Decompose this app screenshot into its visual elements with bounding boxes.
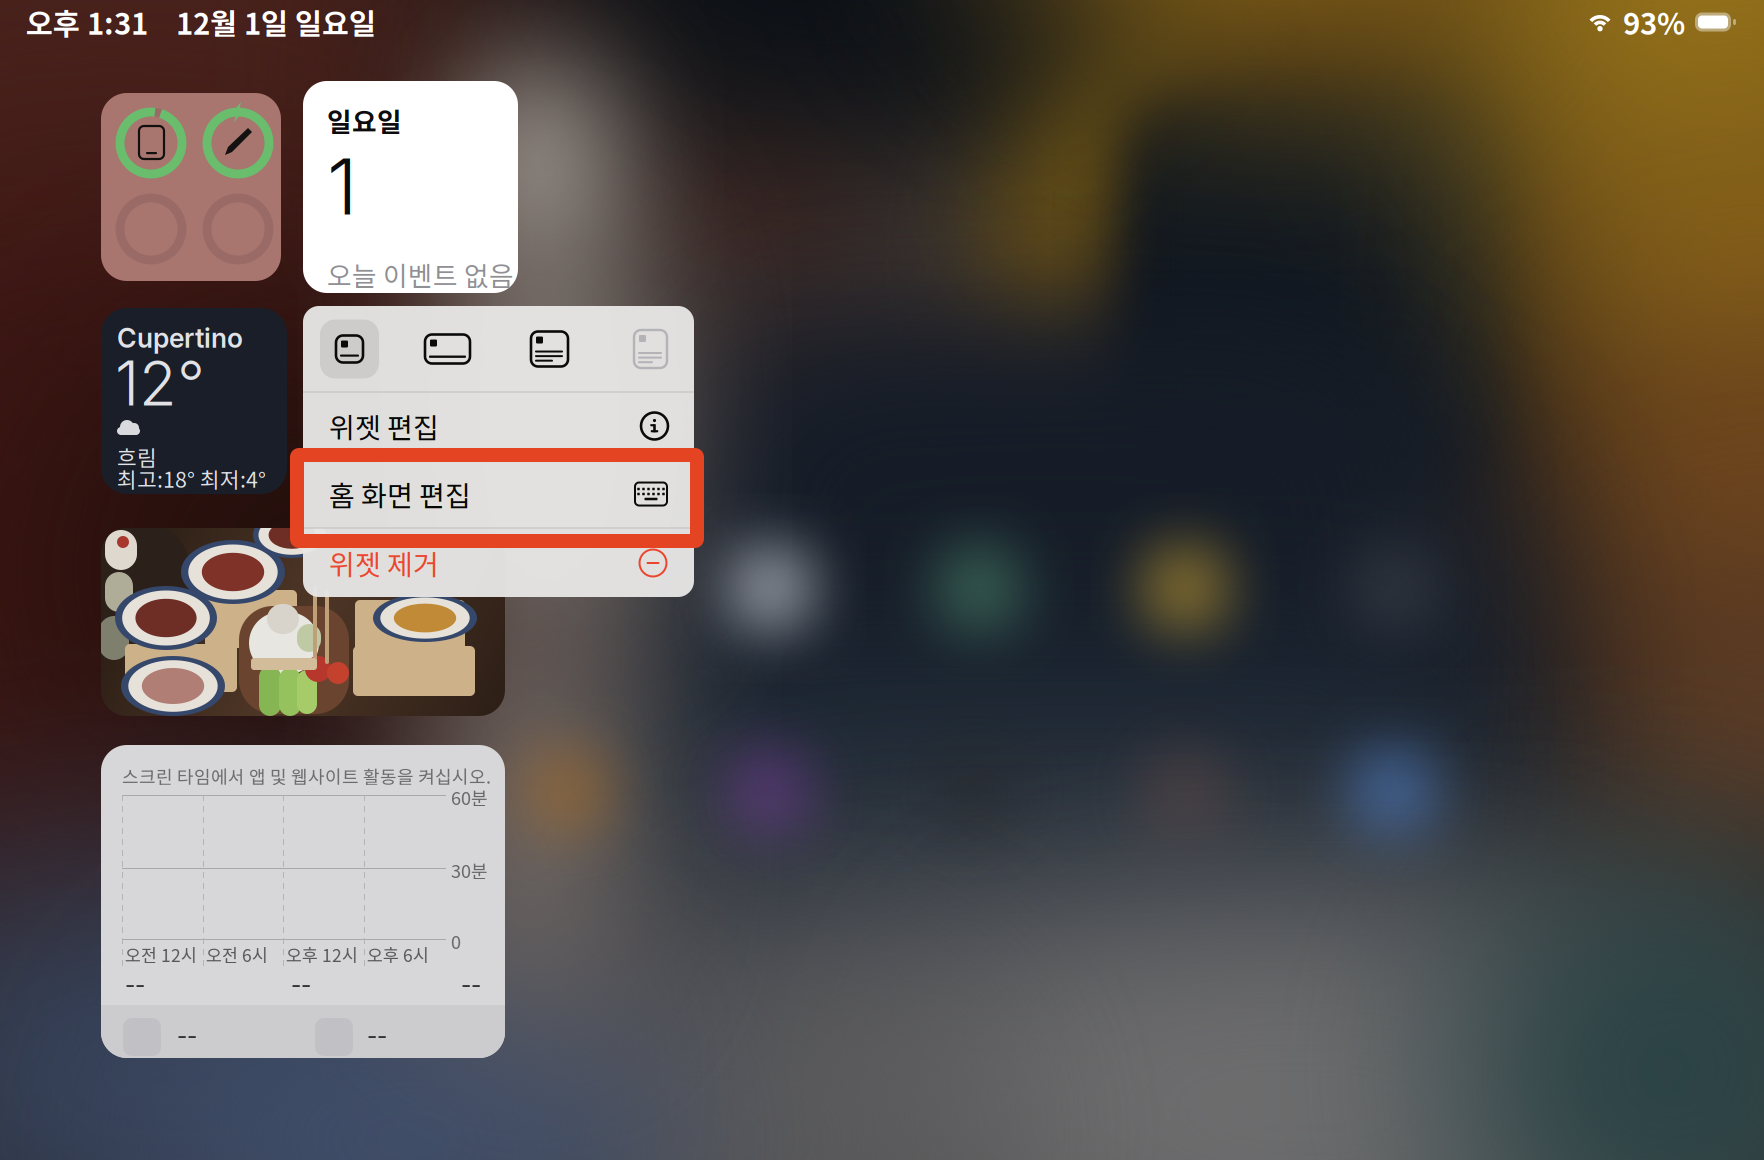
- staticText: 스크린 타임에서 앱 및 웹사이트 활동을 켜십시오.: [122, 763, 491, 789]
- staticText: 30분: [451, 857, 488, 883]
- staticText: --: [291, 971, 311, 998]
- staticText: --: [125, 971, 145, 998]
- staticText: 12월 1일 일요일: [176, 1, 376, 43]
- button[interactable]: 위젯 제거: [303, 528, 694, 597]
- staticText: 60분: [451, 784, 488, 810]
- staticText: 12°: [115, 346, 205, 420]
- button[interactable]: Medium widget size: [418, 319, 477, 378]
- staticText: 홈 화면 편집: [329, 474, 471, 514]
- button[interactable]: Small widget size: [320, 319, 379, 378]
- staticText: 위젯 제거: [329, 543, 439, 583]
- staticText: 오전 6시: [206, 942, 268, 967]
- button[interactable]: 홈 화면 편집: [303, 460, 694, 527]
- button[interactable]: Extra large widget size: [621, 319, 680, 378]
- staticText: 흐림: [117, 441, 157, 472]
- staticText: 93%: [1623, 1, 1685, 43]
- button[interactable]: 위젯 편집: [303, 392, 694, 459]
- staticText: 오후 12시: [286, 942, 358, 967]
- staticText: --: [367, 1022, 387, 1049]
- staticText: 오후 1:31: [26, 1, 148, 43]
- staticText: --: [177, 1022, 197, 1049]
- staticText: 일요일: [327, 101, 402, 140]
- button[interactable]: Large widget size: [520, 319, 579, 378]
- staticText: --: [461, 971, 481, 998]
- staticText: 오늘 이벤트 없음: [327, 255, 514, 294]
- staticText: 위젯 편집: [329, 406, 439, 446]
- staticText: 1: [327, 140, 357, 233]
- staticText: Cupertino: [117, 322, 243, 354]
- staticText: 0: [451, 928, 461, 954]
- staticText: 오전 12시: [125, 942, 197, 967]
- staticText: 최고:18° 최저:4°: [117, 463, 266, 494]
- staticText: 오후 6시: [367, 942, 429, 967]
